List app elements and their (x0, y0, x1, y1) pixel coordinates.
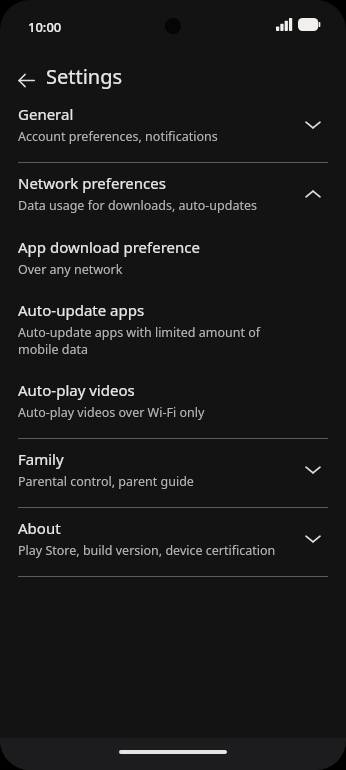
button[interactable]: Auto-update apps (0, 300, 346, 358)
staticText: Auto-update apps with limited amount of … (18, 324, 288, 358)
button[interactable]: Family (0, 449, 346, 490)
button[interactable]: Auto-play videos (0, 380, 346, 421)
button[interactable]: General (0, 104, 346, 145)
staticText: Auto-play videos over Wi-Fi only (18, 404, 205, 421)
staticText: Settings (46, 63, 123, 90)
staticText: Family (18, 449, 64, 469)
staticText: Auto-play videos (18, 380, 135, 400)
staticText: Auto-update apps (18, 300, 145, 320)
staticText: App download preference (18, 237, 200, 257)
staticText: Network preferences (18, 173, 166, 193)
button[interactable]: Network preferences (0, 173, 346, 214)
button[interactable]: Back (6, 61, 46, 99)
staticText: Over any network (18, 261, 123, 278)
staticText: Play Store, build version, device certif… (18, 542, 276, 559)
staticText: General (18, 104, 74, 124)
button[interactable]: App download preference (0, 237, 346, 278)
staticText: Data usage for downloads, auto-updates (18, 197, 258, 214)
button[interactable]: About (0, 518, 346, 559)
staticText: 10:00 (28, 18, 62, 36)
staticText: Account preferences, notifications (18, 128, 218, 145)
staticText: About (18, 518, 61, 538)
staticText: Parental control, parent guide (18, 473, 194, 490)
